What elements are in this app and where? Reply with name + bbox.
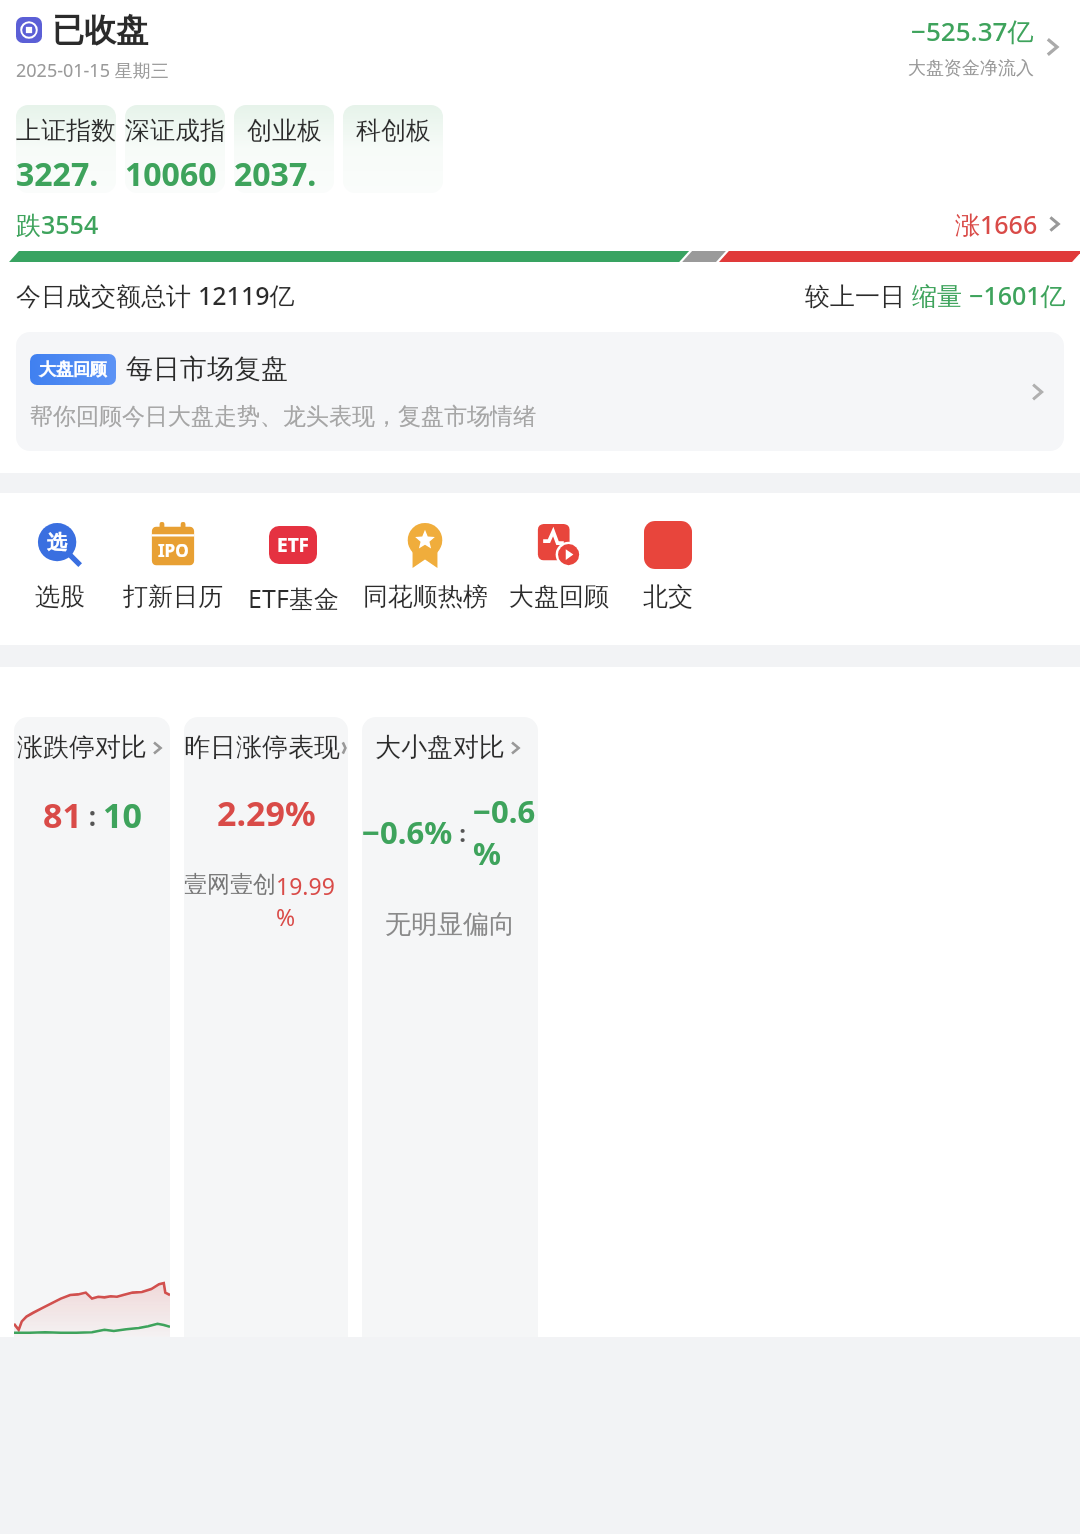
staticText: 已收盘 xyxy=(52,10,148,50)
other: ETF基金 xyxy=(269,521,317,569)
staticText: 12119亿 xyxy=(198,278,295,312)
staticText: : xyxy=(453,816,473,849)
staticText: ETF xyxy=(277,532,310,558)
staticText: 创业板 xyxy=(247,115,322,146)
button[interactable]: 昨日涨停表现 xyxy=(184,717,348,1337)
staticText: 上证指数 xyxy=(16,115,116,146)
button[interactable]: 北交所 xyxy=(628,521,708,612)
staticText: 3227.12 xyxy=(16,152,116,193)
other: 北交所 xyxy=(644,521,692,569)
staticText: 大小盘对比 xyxy=(375,731,505,764)
button[interactable]: 科创板 xyxy=(343,105,443,193)
staticText: 缩量 xyxy=(912,278,969,312)
staticText: 打新日历 xyxy=(123,581,223,612)
staticText: 大盘回顾 xyxy=(39,359,107,380)
staticText: −0.6% xyxy=(362,811,453,853)
staticText: 2037.93 xyxy=(234,152,334,193)
staticText: 今日成交额总计 xyxy=(16,278,198,312)
button[interactable]: 大小盘对比 xyxy=(362,717,538,1337)
staticText: : xyxy=(82,798,103,833)
other: 打新日历 xyxy=(149,521,197,569)
staticText: 跌3554 xyxy=(16,207,99,241)
other: 大盘回顾 xyxy=(535,521,583,569)
other: 选股 xyxy=(36,521,84,569)
button[interactable]: 深证成指 xyxy=(125,105,225,193)
button[interactable]: 大盘回顾 xyxy=(504,521,614,612)
staticText: 涨跌停对比 xyxy=(17,731,147,764)
staticText: 10 xyxy=(103,792,142,838)
button[interactable]: 创业板 xyxy=(234,105,334,193)
staticText: 19.99% xyxy=(276,870,348,932)
button[interactable]: 上证指数 xyxy=(16,105,116,193)
staticText: −1601亿 xyxy=(969,278,1066,312)
staticText: 大盘资金净流入 xyxy=(908,57,1034,80)
staticText: 每日市场复盘 xyxy=(126,352,288,386)
other: 同花顺热榜 xyxy=(401,521,449,569)
staticText: 大盘回顾 xyxy=(509,581,609,612)
staticText: 深证成指 xyxy=(125,115,225,146)
staticText: −525.37亿 xyxy=(911,13,1034,49)
button[interactable]: 大盘回顾 xyxy=(16,332,1064,451)
staticText: 无明显偏向 xyxy=(385,908,515,941)
staticText: 选股 xyxy=(35,581,85,612)
staticText: 10060.13 xyxy=(125,152,225,193)
staticText: 科创板 xyxy=(356,115,431,146)
staticText: IPO xyxy=(158,539,189,562)
staticText: 北交 xyxy=(643,581,693,612)
staticText: 壹网壹创 xyxy=(184,870,276,899)
staticText: 涨1666 xyxy=(955,207,1038,241)
staticText: 选 xyxy=(47,530,67,555)
staticText: −0.6% xyxy=(473,790,538,874)
staticText: 昨日涨停表现 xyxy=(184,731,340,764)
staticText: 81 xyxy=(43,792,82,838)
staticText: 帮你回顾今日大盘走势、龙头表现，复盘市场情绪 xyxy=(30,402,536,431)
staticText: 2025-01-15 星期三 xyxy=(16,58,169,83)
staticText: 2.29% xyxy=(217,790,316,836)
button[interactable]: 选股 xyxy=(14,521,106,612)
button[interactable]: ETF基金 xyxy=(240,521,346,615)
button[interactable]: 涨跌停对比 xyxy=(14,717,170,1337)
staticText: 较上一日 xyxy=(805,278,912,312)
staticText: ETF基金 xyxy=(248,581,339,615)
button[interactable]: 打新日历 xyxy=(120,521,226,612)
button[interactable]: 跌3554 xyxy=(16,207,1066,241)
button[interactable]: 同花顺热榜 xyxy=(360,521,490,612)
staticText: 同花顺热榜 xyxy=(363,581,488,612)
button[interactable]: 已收盘 xyxy=(16,10,1066,83)
